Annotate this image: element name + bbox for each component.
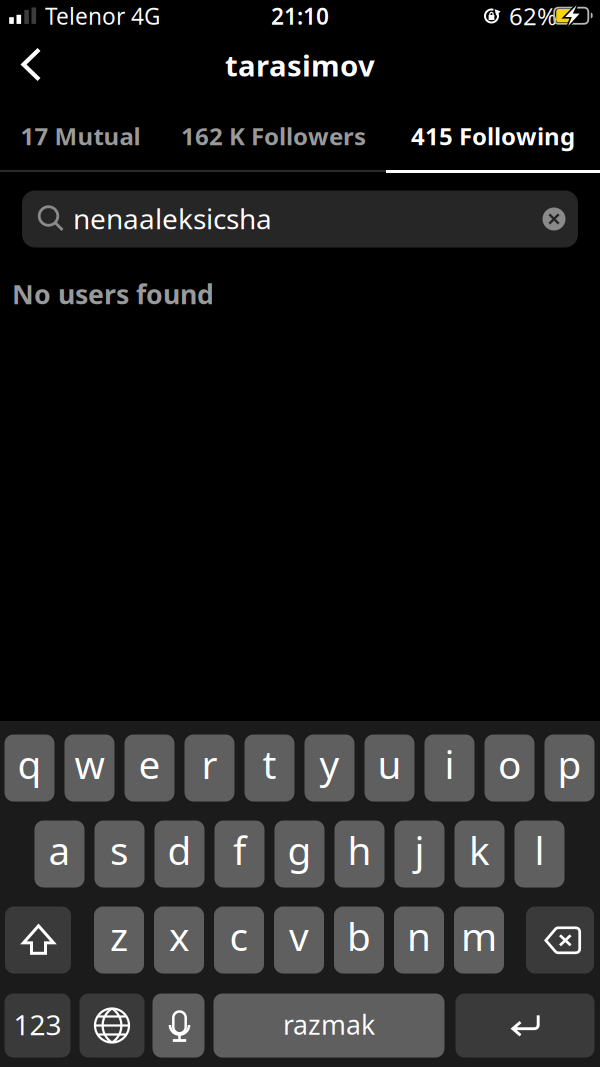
staticText: r xyxy=(201,738,217,790)
staticText: 162 K Followers xyxy=(181,120,366,152)
button[interactable]: z xyxy=(94,906,144,973)
staticText: l xyxy=(534,824,544,876)
staticText: 415 Following xyxy=(411,120,575,152)
button[interactable]: 123 xyxy=(4,993,70,1057)
staticText: s xyxy=(110,824,129,876)
button[interactable]: v xyxy=(274,906,324,973)
button[interactable]: l xyxy=(514,820,564,887)
button[interactable]: c xyxy=(214,906,264,973)
staticText: k xyxy=(469,824,490,876)
button[interactable]: j xyxy=(394,820,444,887)
staticText: tarasimov xyxy=(225,45,375,84)
button[interactable]: Dictate xyxy=(152,993,204,1057)
staticText: 17 Mutual xyxy=(20,120,140,152)
staticText: g xyxy=(287,824,311,876)
button[interactable]: Next keyboard xyxy=(79,993,144,1057)
button[interactable]: Return xyxy=(455,993,594,1057)
staticText: i xyxy=(444,738,454,790)
staticText: z xyxy=(110,910,128,962)
staticText: b xyxy=(347,910,371,962)
button[interactable]: e xyxy=(124,734,174,801)
staticText: e xyxy=(138,738,160,790)
button[interactable]: y xyxy=(304,734,354,801)
staticText: x xyxy=(169,910,189,962)
button[interactable]: w xyxy=(64,734,114,801)
button[interactable]: b xyxy=(334,906,384,973)
button[interactable]: n xyxy=(394,906,444,973)
button[interactable]: q xyxy=(4,734,54,801)
button[interactable]: k xyxy=(454,820,504,887)
staticText: f xyxy=(233,824,246,876)
staticText: nenaaleksicsha xyxy=(73,200,272,237)
staticText: No users found xyxy=(12,276,214,312)
staticText: v xyxy=(289,910,309,962)
staticText: c xyxy=(229,910,248,962)
staticText: o xyxy=(498,738,521,790)
staticText: 123 xyxy=(13,1006,61,1043)
button[interactable]: g xyxy=(274,820,324,887)
button[interactable]: t xyxy=(244,734,294,801)
button[interactable]: i xyxy=(424,734,474,801)
staticText: 21:10 xyxy=(271,1,329,31)
button[interactable]: razmak xyxy=(213,993,444,1057)
button[interactable]: Delete xyxy=(526,906,594,973)
button[interactable]: o xyxy=(484,734,534,801)
staticText: j xyxy=(414,824,424,876)
button[interactable]: x xyxy=(154,906,204,973)
staticText: a xyxy=(48,824,70,876)
button[interactable]: m xyxy=(454,906,504,973)
staticText: w xyxy=(74,738,104,790)
button[interactable]: s xyxy=(94,820,144,887)
staticText: m xyxy=(461,910,497,962)
button[interactable]: p xyxy=(544,734,594,801)
button[interactable]: u xyxy=(364,734,414,801)
staticText: Telenor 4G xyxy=(45,1,161,31)
button[interactable]: a xyxy=(34,820,84,887)
button[interactable]: d xyxy=(154,820,204,887)
staticText: 62% xyxy=(509,0,557,32)
staticText: y xyxy=(319,738,339,790)
staticText: p xyxy=(557,738,581,790)
button[interactable]: r xyxy=(184,734,234,801)
button[interactable]: 17 Mutual xyxy=(0,104,161,168)
button[interactable]: Back xyxy=(0,38,64,94)
staticText: t xyxy=(262,738,276,790)
button[interactable]: f xyxy=(214,820,264,887)
staticText: h xyxy=(347,824,371,876)
staticText: d xyxy=(167,824,191,876)
staticText: q xyxy=(17,738,41,790)
button[interactable]: Shift xyxy=(5,906,71,973)
button[interactable]: 415 Following xyxy=(386,104,600,168)
button[interactable]: Search field xyxy=(22,190,578,247)
staticText: n xyxy=(407,910,431,962)
staticText: u xyxy=(377,738,401,790)
button[interactable]: h xyxy=(334,820,384,887)
button[interactable]: 162 K Followers xyxy=(161,104,386,168)
staticText: razmak xyxy=(283,1007,375,1042)
